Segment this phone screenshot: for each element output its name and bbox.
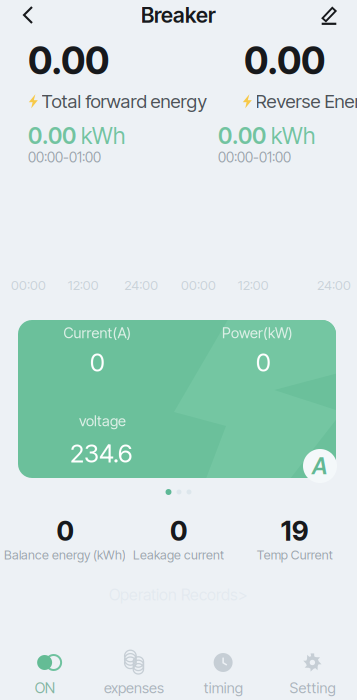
staticText: Leakage current [133, 547, 224, 563]
staticText: 0 [170, 515, 187, 547]
staticText: 0 [256, 347, 271, 378]
staticText: Total forward energy [41, 90, 207, 113]
staticText: 0 [90, 347, 105, 378]
staticText: expenses [104, 679, 164, 697]
staticText: 19 [281, 515, 309, 547]
staticText: Power(kW) [222, 324, 293, 342]
staticText: A [312, 452, 328, 480]
staticText: Temp Current [257, 547, 333, 563]
staticText: Current(A) [63, 324, 131, 342]
staticText: 234.6 [70, 438, 132, 469]
staticText: Reverse Energy [255, 90, 357, 113]
staticText: 00:00 [181, 277, 216, 293]
staticText: 0.00 [218, 122, 266, 149]
button[interactable]: timing [178, 649, 268, 700]
staticText: Balance energy (kWh) [4, 547, 126, 563]
staticText: 0.00 [28, 122, 76, 149]
button[interactable]: Edit [309, 0, 349, 30]
staticText: 0 [56, 515, 73, 547]
staticText: 00:00 [11, 277, 46, 293]
staticText: 24:00 [317, 277, 351, 293]
staticText: Operation Records> [109, 585, 248, 604]
staticText: Breaker [141, 2, 216, 28]
staticText: 24:00 [124, 277, 158, 293]
staticText: 0.00 [28, 38, 109, 83]
staticText: ON [35, 679, 55, 697]
staticText: kWh [81, 122, 125, 149]
staticText: 12:00 [238, 277, 269, 293]
staticText: timing [204, 679, 243, 697]
button[interactable]: ON [0, 649, 89, 700]
button[interactable]: Back [8, 0, 48, 30]
button[interactable]: expenses [89, 649, 178, 700]
staticText: voltage [79, 412, 126, 430]
staticText: 0.00 [244, 38, 325, 83]
staticText: 12:00 [68, 277, 99, 293]
staticText: 00:00-01:00 [218, 149, 291, 166]
staticText: Setting [289, 679, 335, 697]
button[interactable]: Setting [268, 649, 357, 700]
staticText: 00:00-01:00 [28, 149, 101, 166]
staticText: kWh [271, 122, 315, 149]
